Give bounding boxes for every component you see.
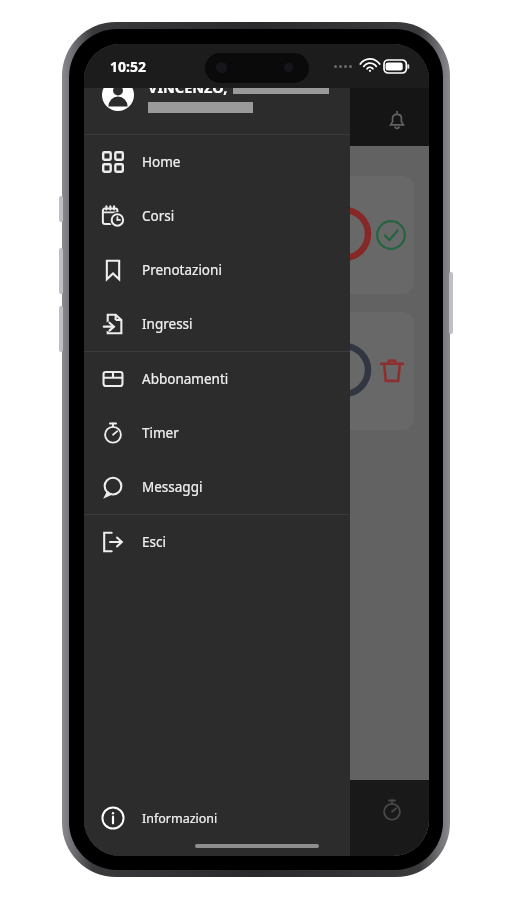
button[interactable]: Esci	[84, 515, 350, 569]
staticText: Prenotazioni	[142, 261, 222, 279]
button[interactable]	[102, 312, 414, 430]
button[interactable]: Notifiche	[379, 102, 415, 138]
button[interactable]: Timer	[84, 406, 350, 460]
staticText: Esci	[142, 533, 166, 551]
staticText: Corsi	[142, 207, 175, 225]
staticText: Timer	[142, 424, 179, 442]
staticText: 10:52	[110, 57, 146, 76]
staticText: VINCENZO,	[148, 77, 228, 97]
button[interactable]: Timer	[374, 792, 410, 828]
staticText: Home	[142, 153, 181, 171]
button[interactable]: Home	[84, 135, 350, 189]
staticText: Abbonamenti	[142, 370, 229, 388]
staticText: Ingressi	[142, 315, 193, 333]
button[interactable]: Ingressi	[84, 297, 350, 351]
button[interactable]: Conferma	[372, 216, 410, 254]
button[interactable]: Abbonamenti	[84, 352, 350, 406]
button[interactable]: Informazioni	[84, 796, 350, 840]
button[interactable]: Elimina	[374, 352, 410, 388]
staticText: Informazioni	[142, 810, 218, 827]
button[interactable]	[102, 176, 414, 294]
staticText: Messaggi	[142, 478, 203, 496]
button[interactable]: Messaggi	[84, 460, 350, 514]
button[interactable]: Prenotazioni	[84, 243, 350, 297]
button[interactable]: Corsi	[84, 189, 350, 243]
button[interactable]: VINCENZO,	[84, 56, 350, 134]
